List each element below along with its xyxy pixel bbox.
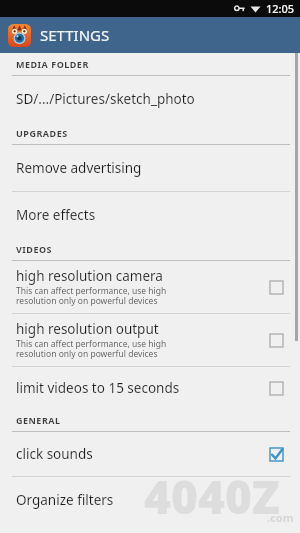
staticText: SETTINGS xyxy=(40,25,110,45)
button[interactable]: high resolution camera xyxy=(0,261,300,314)
button[interactable]: click sounds xyxy=(0,432,300,477)
staticText: high resolution camera xyxy=(16,267,163,285)
staticText: This can affect performance, use high re… xyxy=(16,285,167,307)
staticText: GENERAL xyxy=(16,414,61,426)
button[interactable]: Organize filters xyxy=(0,477,300,523)
staticText: This can affect performance, use high re… xyxy=(16,338,167,360)
button[interactable]: Remove advertising xyxy=(0,145,300,192)
staticText: SD/.../Pictures/sketch_photo xyxy=(16,90,195,108)
staticText: limit videos to 15 seconds xyxy=(16,379,180,397)
button[interactable]: Unchecked xyxy=(266,378,286,398)
button[interactable]: More effects xyxy=(0,192,300,238)
staticText: MEDIA FOLDER xyxy=(16,58,89,70)
button[interactable]: Checked xyxy=(266,444,286,464)
button[interactable]: high resolution output xyxy=(0,314,300,367)
staticText: .com xyxy=(267,510,294,525)
staticText: Organize filters xyxy=(16,491,114,509)
staticText: VIDEOS xyxy=(16,243,53,255)
staticText: More effects xyxy=(16,206,96,224)
button[interactable]: SD/.../Pictures/sketch_photo xyxy=(0,76,300,122)
staticText: 12:05 xyxy=(266,1,295,16)
button[interactable]: Unchecked xyxy=(266,330,286,350)
staticText: UPGRADES xyxy=(16,127,68,139)
button[interactable]: limit videos to 15 seconds xyxy=(0,367,300,409)
staticText: 4040Z xyxy=(144,465,280,528)
button[interactable]: Unchecked xyxy=(266,277,286,297)
staticText: high resolution output xyxy=(16,320,159,338)
staticText: Remove advertising xyxy=(16,159,142,177)
staticText: click sounds xyxy=(16,445,93,463)
